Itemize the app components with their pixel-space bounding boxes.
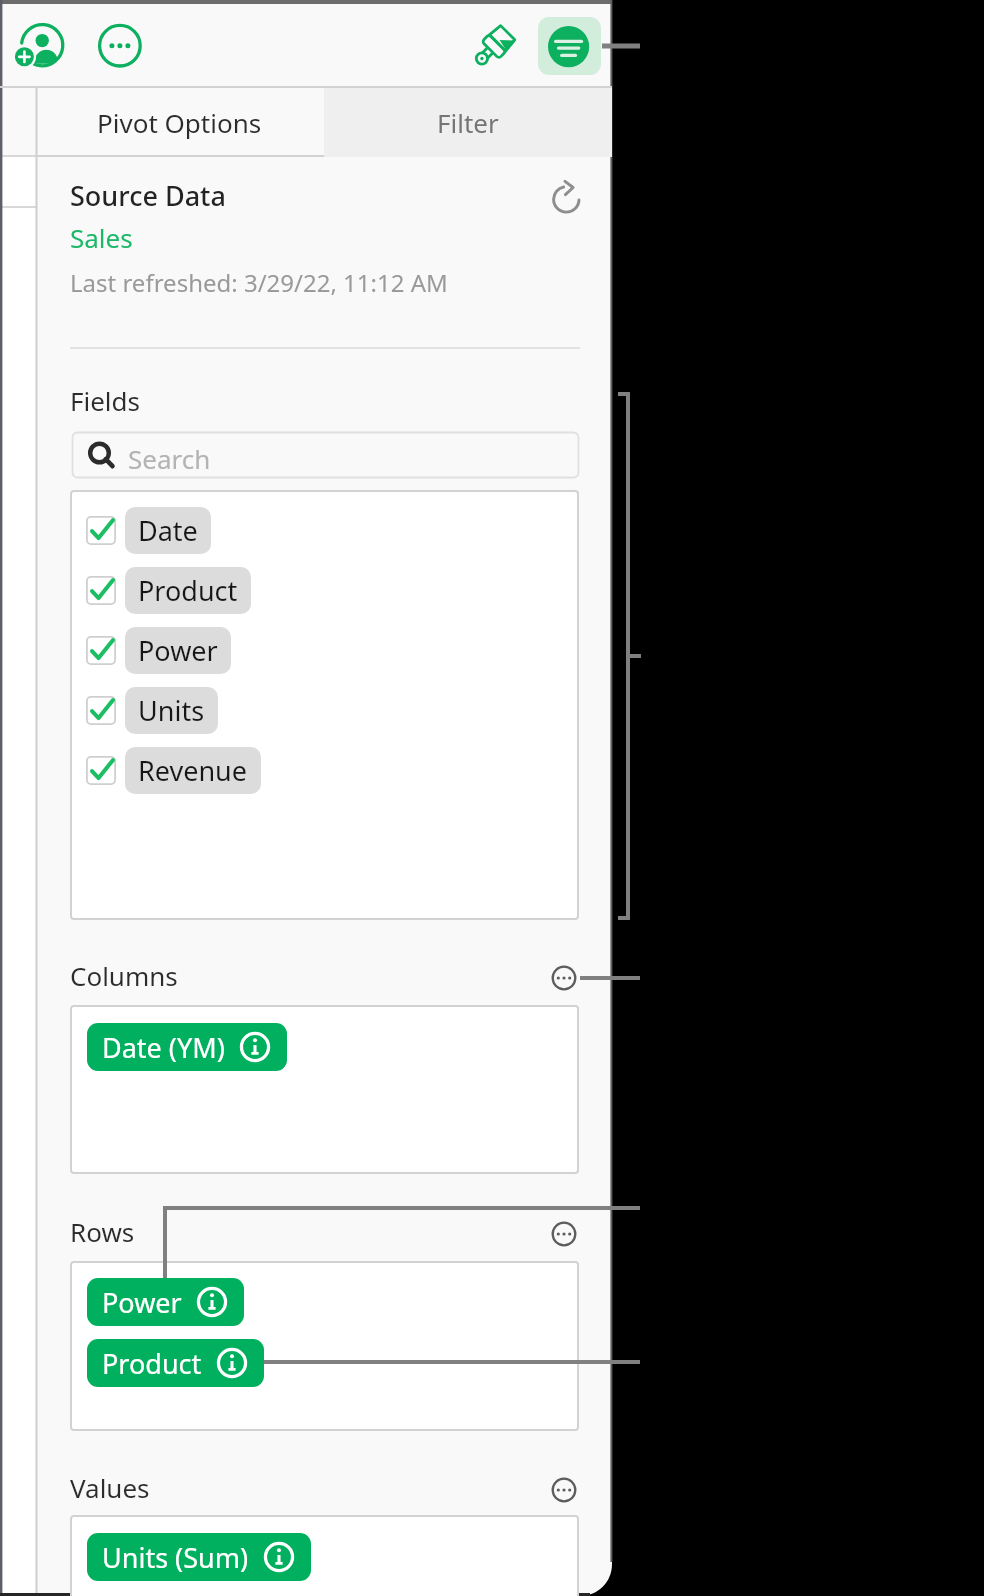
button[interactable]: Product [86,567,251,614]
button[interactable]: Add collaborator [7,14,77,84]
staticText: Last refreshed: 3/29/22, 11:12 AM [70,266,448,299]
staticText: Fields [70,383,141,418]
button[interactable]: Values options [545,1471,583,1509]
staticText: Search [128,441,211,476]
button[interactable]: Product [87,1339,264,1387]
button[interactable]: Units (Sum) [87,1533,311,1581]
button[interactable]: Format [462,14,532,84]
button[interactable]: Units [86,687,218,734]
button[interactable]: Organize [538,17,601,75]
staticText: Revenue [138,752,248,789]
button[interactable]: Search [72,432,579,478]
button[interactable]: Sales [70,220,133,255]
staticText: Rows [70,1214,135,1249]
button[interactable]: Date (YM) [87,1023,287,1071]
staticText: Filter [437,105,499,140]
button[interactable]: Rows options [545,1215,583,1253]
staticText: Date [138,512,198,549]
staticText: Pivot Options [97,105,262,140]
staticText: Product [102,1345,202,1382]
button[interactable]: Power [86,627,231,674]
button[interactable]: Pivot Options [36,88,323,157]
staticText: Units (Sum) [102,1539,249,1576]
button[interactable]: Revenue [86,747,261,794]
staticText: Units [138,692,205,729]
staticText: Power [102,1284,182,1321]
button[interactable]: Filter [324,88,612,157]
button[interactable]: Date [86,507,211,554]
staticText: Power [138,632,218,669]
button[interactable]: Refresh [544,176,588,220]
staticText: Values [70,1470,150,1505]
staticText: Source Data [70,177,226,214]
staticText: Product [138,572,238,609]
staticText: Date (YM) [102,1029,225,1066]
button[interactable]: Power [87,1278,244,1326]
button[interactable]: Columns options [545,959,583,997]
button[interactable]: More options [90,16,152,78]
staticText: Columns [70,958,178,993]
